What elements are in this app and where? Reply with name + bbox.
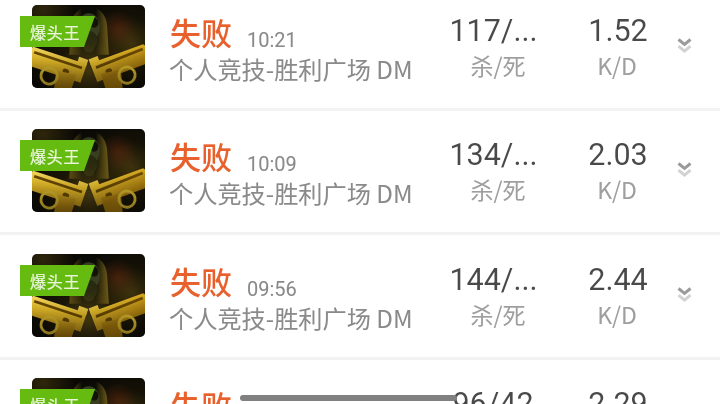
button[interactable]: Expand details (654, 15, 714, 75)
staticText: 爆头王 (30, 393, 81, 404)
staticText: 134/... (449, 137, 538, 173)
staticText: 杀/死 (470, 48, 526, 81)
staticText: 爆头王 (30, 144, 81, 167)
staticText: 117/... (449, 13, 538, 49)
staticText: 失败 (170, 133, 232, 178)
button[interactable]: 爆头王 (0, 357, 720, 404)
staticText: K/D (597, 172, 637, 205)
staticText: K/D (597, 297, 637, 330)
staticText: 爆头王 (30, 269, 81, 292)
staticText: 个人竞技-胜利广场 DM (169, 51, 413, 86)
staticText: 2.44 (588, 262, 648, 298)
button[interactable]: 爆头王 (0, 108, 720, 233)
button[interactable]: 爆头王 (0, 0, 720, 109)
staticText: 失败 (170, 258, 232, 303)
button[interactable]: Expand details (654, 139, 714, 199)
staticText: 失败 (170, 9, 232, 54)
staticText: 09:56 (247, 277, 297, 300)
staticText: 96/42 (452, 386, 534, 404)
staticText: 1.52 (588, 13, 648, 49)
staticText: 个人竞技-胜利广场 DM (169, 300, 413, 335)
staticText: 144/... (449, 262, 538, 298)
staticText: 2.03 (588, 137, 648, 173)
staticText: 爆头王 (30, 20, 81, 43)
button[interactable]: 爆头王 (0, 233, 720, 358)
staticText: 杀/死 (470, 297, 526, 330)
staticText: 杀/死 (470, 172, 526, 205)
staticText: 2.29 (588, 386, 648, 404)
staticText: 失败 (170, 382, 232, 404)
staticText: 10:09 (247, 152, 297, 175)
button[interactable]: Expand details (654, 264, 714, 324)
staticText: 10:21 (247, 28, 297, 51)
staticText: K/D (597, 48, 637, 81)
staticText: 个人竞技-胜利广场 DM (169, 175, 413, 210)
